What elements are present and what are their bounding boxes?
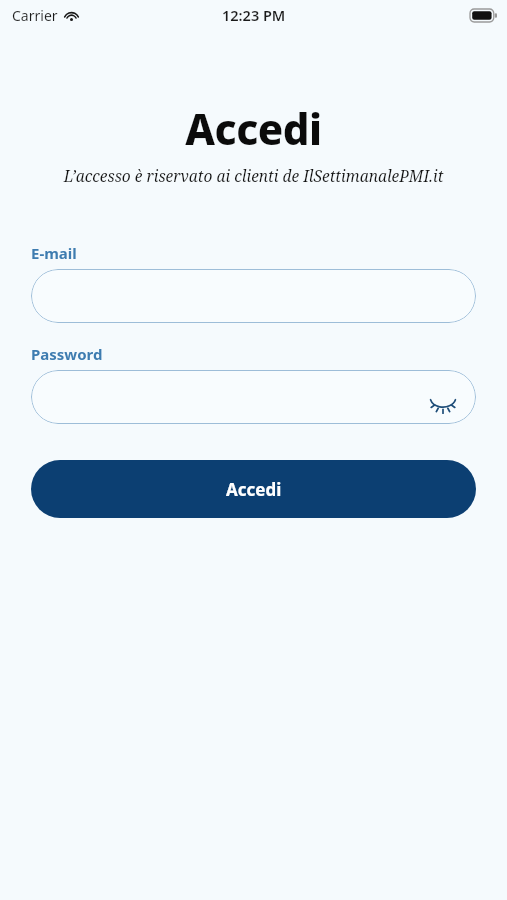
- button[interactable]: Show password: [426, 380, 460, 414]
- button[interactable]: Show password: [31, 370, 476, 424]
- staticText: E-mail: [31, 243, 77, 263]
- staticText: Password: [31, 344, 103, 364]
- staticText: L’accesso è riservato ai clienti de IlSe…: [24, 165, 483, 186]
- button[interactable]: Accedi: [31, 460, 476, 518]
- staticText: Accedi: [0, 100, 507, 157]
- staticText: Accedi: [226, 478, 282, 501]
- button[interactable]: [31, 269, 476, 323]
- staticText: Carrier: [12, 6, 58, 25]
- staticText: 12:23 PM: [222, 5, 286, 25]
